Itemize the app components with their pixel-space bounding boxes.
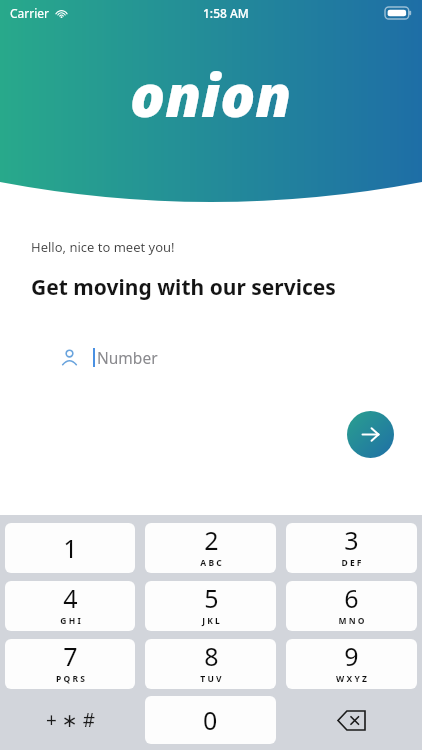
button[interactable]: 3 [286,523,417,573]
staticText: 9 [344,639,359,673]
staticText: J K L [202,615,220,627]
button[interactable]: 5 [145,581,276,631]
staticText: 8 [204,639,219,673]
button[interactable]: Number [31,326,391,389]
button[interactable]: Symbols [5,696,135,744]
button[interactable]: 4 [5,581,135,631]
staticText: Number [97,347,158,368]
staticText: Get moving with our services [31,273,336,302]
button[interactable]: 6 [286,581,417,631]
staticText: 4 [63,581,78,615]
staticText: 2 [204,523,219,557]
staticText: onion [130,55,292,134]
button[interactable]: 7 [5,639,135,689]
button[interactable]: Continue [347,411,394,458]
staticText: + ∗ # [46,707,95,733]
button[interactable]: 8 [145,639,276,689]
staticText: 7 [63,639,78,673]
button[interactable]: 2 [145,523,276,573]
staticText: P Q R S [56,673,85,685]
staticText: T U V [200,673,222,685]
staticText: 1 [63,531,78,565]
staticText: Carrier [10,5,50,21]
staticText: D E F [341,557,362,569]
staticText: M N O [338,615,365,627]
button[interactable]: 9 [286,639,417,689]
button[interactable]: Backspace [286,696,417,744]
button[interactable]: 0 [145,696,276,744]
staticText: 0 [203,703,218,737]
staticText: 1:58 AM [203,5,249,21]
staticText: G H I [60,615,81,627]
staticText: 5 [204,581,219,615]
staticText: 3 [344,523,359,557]
staticText: W X Y Z [336,673,367,685]
staticText: Hello, nice to meet you! [31,238,175,256]
staticText: 6 [344,581,359,615]
staticText: A B C [200,557,222,569]
button[interactable]: 1 [5,523,135,573]
